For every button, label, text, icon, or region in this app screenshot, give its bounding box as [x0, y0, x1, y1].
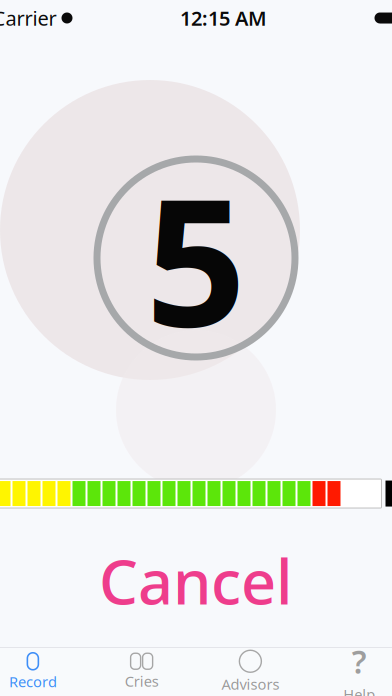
staticText: Advisors	[221, 674, 279, 694]
button[interactable]: Cries	[87, 648, 196, 696]
staticText: Carrier	[0, 5, 56, 31]
staticText: Cancel	[99, 540, 293, 621]
staticText: 12:15 AM	[180, 5, 267, 31]
staticText: Help	[343, 684, 375, 696]
button[interactable]: Cancel	[0, 540, 392, 621]
staticText: Record	[9, 672, 57, 691]
button[interactable]: Record	[0, 648, 87, 696]
staticText: Cries	[125, 671, 159, 691]
button[interactable]: Advisors	[196, 648, 305, 696]
staticText: 5	[145, 141, 246, 375]
staticText: ?	[352, 640, 367, 682]
button[interactable]: ?	[305, 648, 392, 696]
